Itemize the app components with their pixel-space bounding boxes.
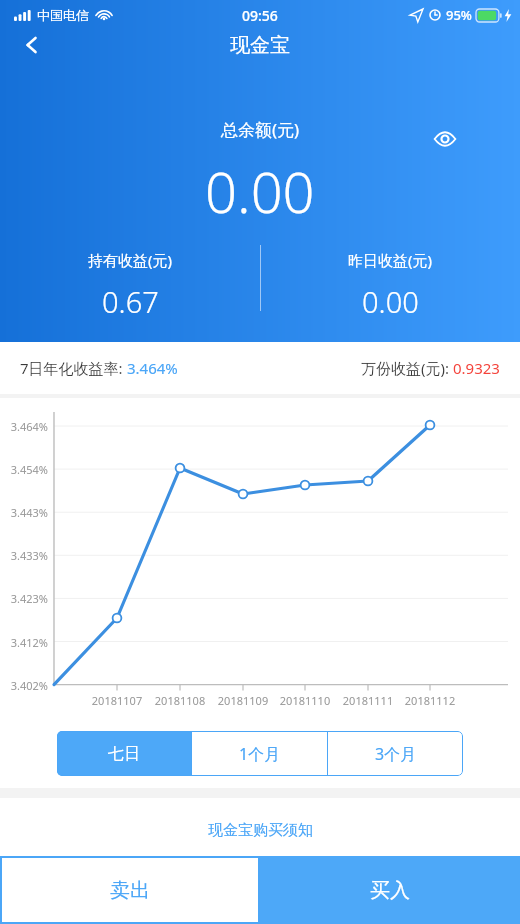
staticText: 持有收益(元) [88, 250, 173, 270]
staticText: 昨日收益(元) [348, 250, 433, 270]
staticText: 总余额(元) [221, 118, 300, 141]
staticText: 0.67 [102, 282, 159, 321]
staticText: 20181107 [86, 693, 148, 708]
staticText: 3.454% [2, 462, 48, 477]
staticText: 0.00 [362, 282, 419, 321]
staticText: 买入 [370, 878, 410, 903]
staticText: 3.433% [2, 548, 48, 563]
staticText: 09:56 [242, 6, 278, 25]
button[interactable]: 3个月 [328, 731, 463, 776]
button[interactable]: Toggle balance visibility [424, 118, 466, 160]
staticText: 3.464% [2, 419, 48, 434]
staticText: 20181111 [337, 693, 399, 708]
staticText: 3.402% [2, 678, 48, 693]
staticText: 现金宝 [230, 33, 290, 58]
staticText: 20181112 [399, 693, 461, 708]
staticText: 20181109 [212, 693, 274, 708]
staticText: 20181110 [274, 693, 336, 708]
staticText: 0.9323 [453, 358, 500, 378]
staticText: 中国电信 [37, 7, 89, 23]
staticText: 七日 [108, 744, 140, 764]
button[interactable]: 七日 [57, 731, 191, 776]
staticText: 3.423% [2, 591, 48, 606]
staticText: 3个月 [375, 743, 417, 765]
button[interactable]: Back [8, 30, 56, 60]
button[interactable]: 买入 [260, 856, 520, 924]
button[interactable]: 1个月 [192, 731, 327, 776]
staticText: 20181108 [149, 693, 211, 708]
staticText: 3.443% [2, 505, 48, 520]
button[interactable]: 卖出 [0, 856, 260, 924]
staticText: 3.412% [2, 635, 48, 650]
button[interactable]: 现金宝购买须知 [0, 798, 520, 862]
staticText: 7日年化收益率: [20, 358, 127, 378]
staticText: 0.00 [205, 153, 315, 229]
staticText: 95% [446, 6, 472, 24]
staticText: 1个月 [239, 743, 281, 765]
staticText: 万份收益(元): [361, 358, 453, 378]
staticText: 卖出 [110, 878, 150, 903]
staticText: 3.464% [127, 358, 178, 378]
staticText: 现金宝购买须知 [208, 821, 313, 840]
